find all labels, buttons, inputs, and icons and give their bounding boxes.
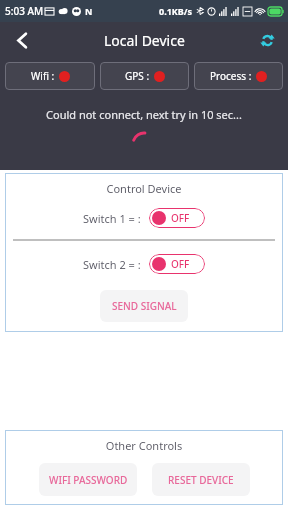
staticText: Could not connect, next try in 10 sec...	[0, 107, 288, 122]
button[interactable]: WIFI PASSWORD	[39, 463, 137, 496]
staticText: 5:03 AM	[5, 4, 44, 18]
staticText: WIFI PASSWORD	[49, 473, 128, 487]
staticText: OFF	[171, 257, 190, 271]
staticText: Switch 1 = :	[83, 211, 141, 226]
staticText: Control Device	[5, 181, 283, 196]
staticText: 0.1KB/s	[159, 5, 193, 17]
staticText: OFF	[171, 211, 190, 225]
button[interactable]: Wifi :	[5, 62, 95, 90]
staticText: GPS :	[125, 69, 150, 83]
button[interactable]: OFF	[149, 208, 205, 228]
button[interactable]: GPS :	[100, 62, 189, 90]
staticText: Other Controls	[5, 438, 283, 453]
staticText: Process :	[210, 69, 252, 83]
button[interactable]: Refresh	[252, 25, 282, 55]
staticText: SEND SIGNAL	[112, 299, 177, 313]
button[interactable]: Back	[6, 24, 38, 56]
button[interactable]: OFF	[149, 254, 205, 274]
staticText: Local Device	[104, 31, 185, 50]
staticText: Switch 2 = :	[83, 257, 141, 272]
staticText: RESET DEVICE	[168, 473, 234, 487]
button[interactable]: SEND SIGNAL	[100, 290, 188, 322]
staticText: Wifi :	[31, 69, 55, 83]
button[interactable]: RESET DEVICE	[152, 463, 250, 496]
button[interactable]: Process :	[194, 62, 283, 90]
staticText: N	[85, 5, 93, 17]
